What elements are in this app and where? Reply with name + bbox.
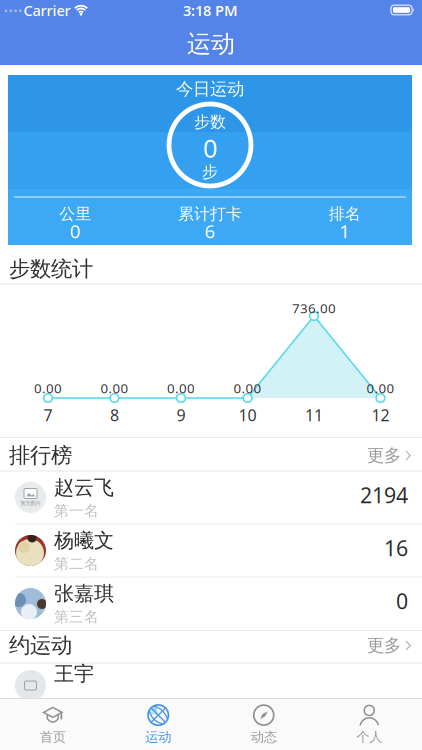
button[interactable]: 暂无图片 <box>0 471 422 524</box>
staticText: 张嘉琪 <box>54 581 114 606</box>
staticText: 公里 <box>59 204 91 224</box>
staticText: 2194 <box>360 481 408 509</box>
staticText: 排行榜 <box>9 442 72 469</box>
button[interactable]: 更多 <box>367 445 412 466</box>
staticText: 排名 <box>329 204 361 224</box>
staticText: 0 <box>396 587 408 615</box>
staticText: 0.00 <box>100 379 128 397</box>
staticText: 8 <box>110 404 119 426</box>
staticText: 运动 <box>145 729 171 745</box>
staticText: 累计打卡 <box>178 204 242 224</box>
button[interactable]: 更多 <box>367 635 412 656</box>
staticText: 杨曦文 <box>54 528 114 553</box>
staticText: 9 <box>176 404 185 426</box>
staticText: 0.00 <box>233 379 261 397</box>
staticText: 运动 <box>187 29 235 59</box>
staticText: 第三名 <box>54 608 99 626</box>
staticText: 暂无图片 <box>20 500 40 507</box>
staticText: 0 <box>70 219 81 243</box>
staticText: 步数统计 <box>9 256 93 282</box>
staticText: 第二名 <box>54 555 99 573</box>
staticText: 1 <box>339 219 350 243</box>
button[interactable]: 首页 <box>0 699 105 749</box>
staticText: 736.00 <box>292 299 336 317</box>
staticText: 0 <box>203 131 217 165</box>
staticText: 7 <box>43 404 52 426</box>
staticText: 个人 <box>356 729 382 745</box>
button[interactable]: 动态 <box>211 699 316 749</box>
button[interactable]: 运动 <box>105 699 211 749</box>
staticText: 王宇 <box>54 662 94 686</box>
button[interactable]: 王宇 <box>0 659 422 712</box>
staticText: 步数 <box>194 112 226 132</box>
staticText: 首页 <box>40 729 66 745</box>
staticText: 3:18 PM <box>183 0 238 20</box>
staticText: 更多 <box>367 445 401 466</box>
staticText: 今日运动 <box>176 78 244 100</box>
staticText: 11 <box>305 404 323 426</box>
staticText: 0.00 <box>167 379 195 397</box>
staticText: 12 <box>371 404 389 426</box>
staticText: 赵云飞 <box>54 475 114 500</box>
staticText: 约运动 <box>9 632 72 659</box>
button[interactable]: 杨曦文 <box>0 524 422 577</box>
staticText: 第一名 <box>54 502 99 520</box>
staticText: 6 <box>204 219 215 243</box>
staticText: 0.00 <box>34 379 62 397</box>
staticText: 0.00 <box>366 379 394 397</box>
staticText: 动态 <box>251 729 277 745</box>
staticText: 10 <box>238 404 256 426</box>
staticText: 步 <box>202 162 218 182</box>
staticText <box>54 688 58 709</box>
button[interactable]: 张嘉琪 <box>0 577 422 630</box>
button[interactable]: 个人 <box>316 699 422 749</box>
staticText: Carrier <box>23 0 70 20</box>
staticText: 更多 <box>367 635 401 656</box>
staticText: 16 <box>384 534 408 562</box>
